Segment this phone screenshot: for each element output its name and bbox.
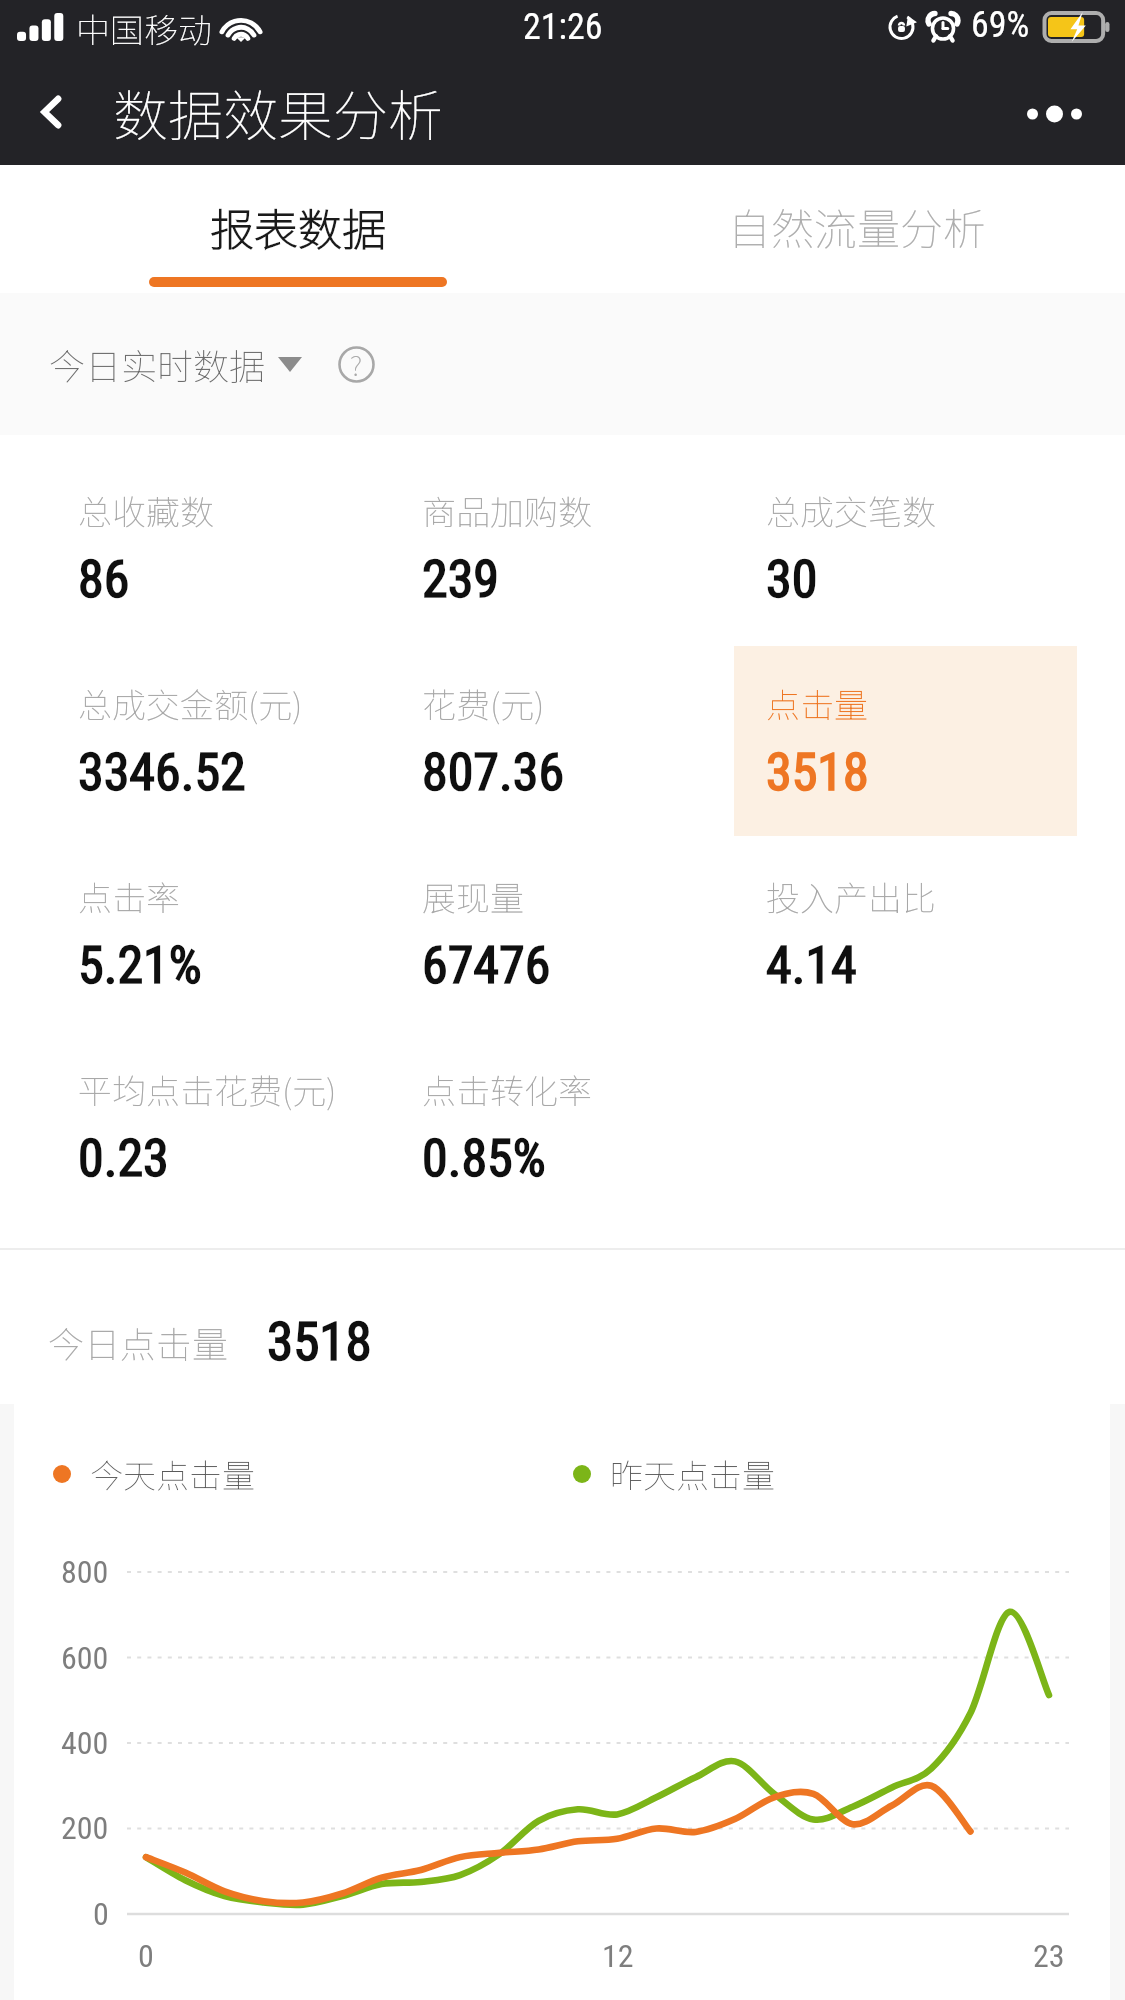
button[interactable]: 今日实时数据 xyxy=(49,338,302,390)
staticText: 自然流量分析 xyxy=(728,195,986,257)
staticText: 3518 xyxy=(267,1311,372,1373)
button[interactable]: 总收藏数 xyxy=(46,453,389,643)
staticText: 昨天点击量 xyxy=(610,1450,775,1498)
staticText: 总成交金额(元) xyxy=(78,679,303,728)
button[interactable]: Back xyxy=(0,58,104,165)
button[interactable]: 总成交笔数 xyxy=(734,453,1077,643)
staticText: 今日实时数据 xyxy=(49,338,266,390)
staticText: ? xyxy=(350,344,363,385)
staticText: 86 xyxy=(78,549,130,610)
staticText: 5.21% xyxy=(78,935,202,996)
staticText: 中国移动 xyxy=(76,4,212,53)
staticText: 3346.52 xyxy=(78,742,246,803)
button[interactable]: More options xyxy=(995,58,1115,165)
button[interactable]: 平均点击花费(元) xyxy=(46,1032,389,1215)
staticText: 花费(元) xyxy=(422,679,545,728)
button[interactable]: 花费(元) xyxy=(390,646,733,836)
button[interactable]: Help xyxy=(333,341,379,387)
staticText: 数据效果分析 xyxy=(113,72,444,152)
staticText: 今天点击量 xyxy=(90,1450,255,1498)
other: Alarm set xyxy=(930,12,956,41)
button[interactable]: 总成交金额(元) xyxy=(46,646,389,836)
staticText: 4.14 xyxy=(766,935,857,996)
staticText: 807.36 xyxy=(422,742,565,803)
staticText: 商品加购数 xyxy=(422,486,592,535)
button[interactable]: 自然流量分析 xyxy=(576,165,1125,293)
staticText: 21:26 xyxy=(523,6,603,48)
button[interactable]: 点击率 xyxy=(46,839,389,1029)
staticText: 总成交笔数 xyxy=(766,486,936,535)
staticText: 今日点击量 xyxy=(48,1316,229,1368)
button[interactable]: 昨天点击量 xyxy=(573,1444,803,1504)
staticText: 239 xyxy=(422,549,500,610)
staticText: 69% xyxy=(971,4,1030,46)
staticText: 600 xyxy=(61,1639,109,1677)
button[interactable]: 投入产出比 xyxy=(734,839,1077,1029)
staticText: 点击转化率 xyxy=(422,1065,592,1114)
staticText: 0.23 xyxy=(78,1128,169,1189)
staticText: 0 xyxy=(138,1937,154,1975)
button[interactable]: 今天点击量 xyxy=(53,1444,283,1504)
button[interactable]: 商品加购数 xyxy=(390,453,733,643)
button[interactable]: 点击量 xyxy=(734,646,1077,836)
staticText: 800 xyxy=(61,1553,109,1591)
staticText: 0.85% xyxy=(422,1128,546,1189)
staticText: 点击率 xyxy=(78,872,180,921)
staticText: 平均点击花费(元) xyxy=(78,1065,337,1114)
button[interactable]: 报表数据 xyxy=(17,165,579,293)
button[interactable]: 点击转化率 xyxy=(390,1032,733,1215)
staticText: 400 xyxy=(61,1724,109,1762)
staticText: 67476 xyxy=(422,935,551,996)
staticText: 报表数据 xyxy=(210,195,386,259)
staticText: 投入产出比 xyxy=(766,872,936,921)
button[interactable]: 展现量 xyxy=(390,839,733,1029)
staticText: 0 xyxy=(93,1895,109,1933)
staticText: 30 xyxy=(766,549,818,610)
other: Battery 69 percent charging xyxy=(1043,13,1110,41)
staticText: 展现量 xyxy=(422,872,524,921)
staticText: 总收藏数 xyxy=(78,486,214,535)
other: Rotation lock xyxy=(887,13,916,41)
staticText: 23 xyxy=(1033,1937,1065,1975)
staticText: 3518 xyxy=(766,742,869,803)
staticText: 点击量 xyxy=(766,679,868,728)
staticText: 200 xyxy=(61,1809,109,1847)
staticText: 12 xyxy=(602,1937,634,1975)
